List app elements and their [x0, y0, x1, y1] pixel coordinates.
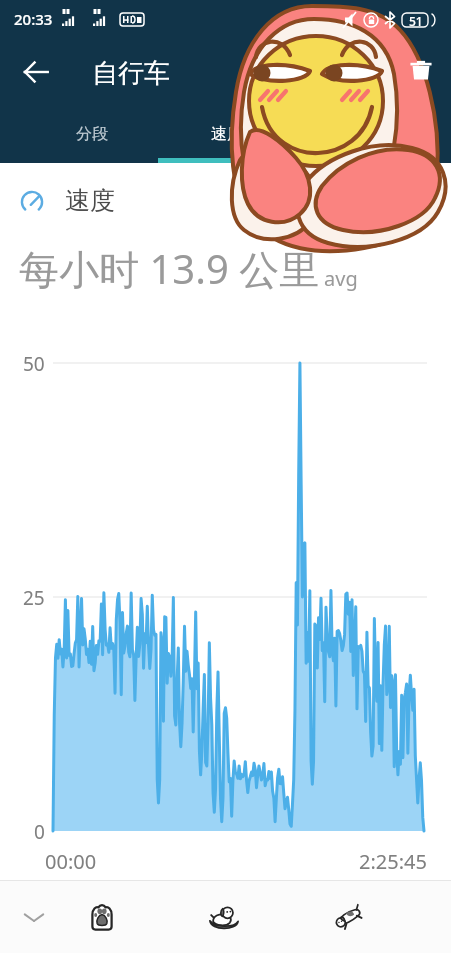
- button[interactable]: Cat sticker: [200, 893, 248, 941]
- staticText: 速度: [211, 124, 243, 144]
- button[interactable]: Cat lying sticker: [323, 893, 371, 941]
- button[interactable]: 速度: [160, 105, 293, 163]
- button[interactable]: Collapse: [10, 893, 58, 941]
- button[interactable]: Delete: [399, 48, 443, 92]
- staticText: 20:33: [14, 9, 53, 29]
- staticText: 25: [23, 585, 45, 611]
- button[interactable]: Back: [16, 52, 56, 92]
- staticText: 00:00: [45, 848, 97, 875]
- staticText: avg: [324, 265, 358, 292]
- staticText: 速度: [65, 185, 115, 216]
- staticText: 50: [23, 351, 45, 377]
- staticText: 自行车: [92, 57, 170, 90]
- staticText: 0: [34, 819, 45, 845]
- button[interactable]: Paw sticker: [78, 893, 126, 941]
- staticText: 每小时 13.9 公里: [19, 241, 320, 296]
- staticText: 51: [409, 13, 423, 29]
- button[interactable]: 分段: [24, 105, 160, 163]
- staticText: 2:25:45: [359, 848, 427, 875]
- staticText: 分段: [76, 124, 108, 144]
